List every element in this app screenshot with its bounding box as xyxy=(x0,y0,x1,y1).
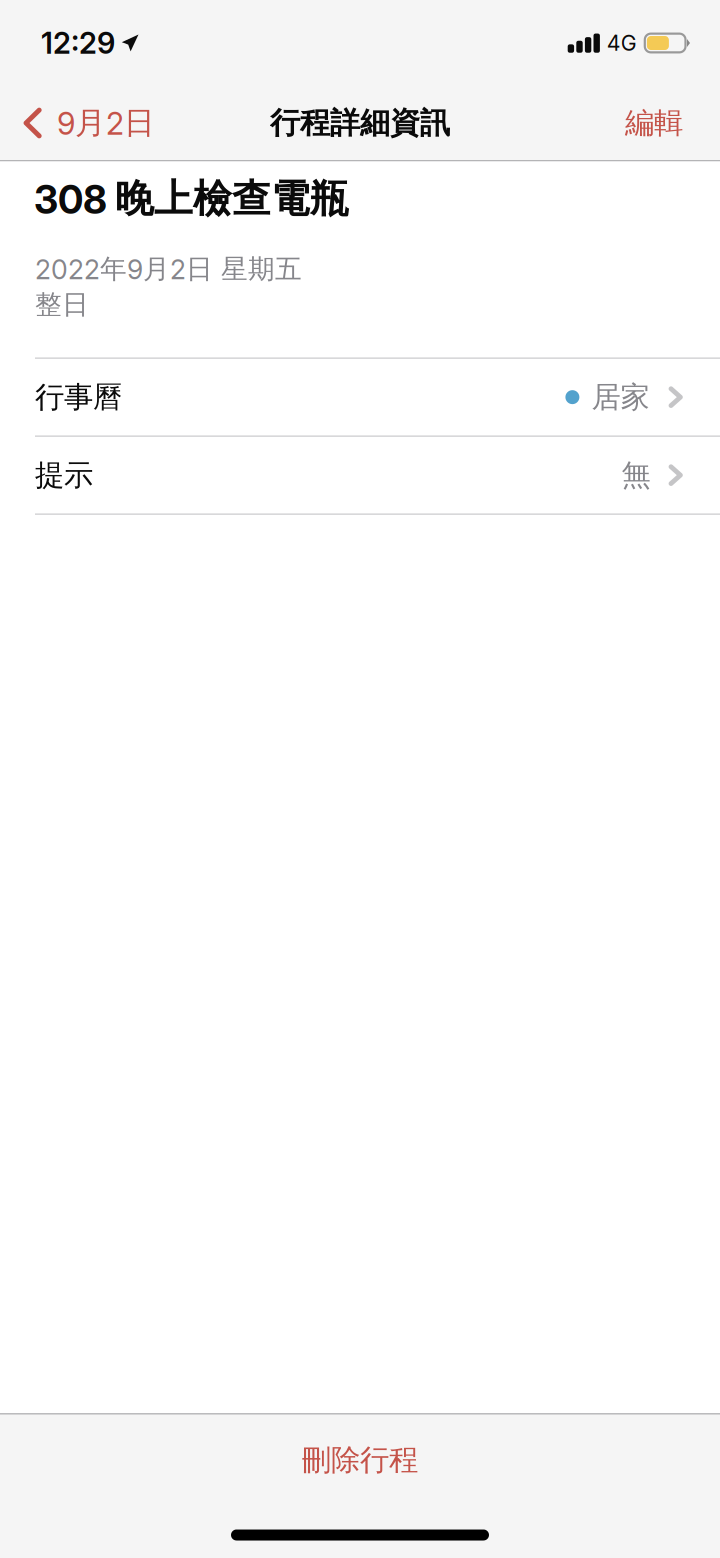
button[interactable]: 9月2日 xyxy=(0,86,169,160)
button[interactable]: 行事曆 xyxy=(0,359,720,437)
staticText: 刪除行程 xyxy=(302,1441,418,1478)
button[interactable]: 提示 xyxy=(0,437,720,515)
staticText: 無 xyxy=(621,457,650,494)
staticText: 9月2日 xyxy=(57,104,155,142)
staticText: 行程詳細資訊 xyxy=(270,104,450,142)
staticText: 居家 xyxy=(591,379,649,416)
staticText: 編輯 xyxy=(625,104,683,141)
staticText: 整日 xyxy=(35,288,89,321)
staticText: 2022年9月2日 星期五 xyxy=(35,252,302,286)
staticText: 行事曆 xyxy=(35,379,122,416)
staticText: 12:29 xyxy=(41,25,115,61)
staticText: 提示 xyxy=(35,457,93,494)
button[interactable]: 編輯 xyxy=(607,86,720,160)
staticText: 4G xyxy=(607,30,637,56)
button[interactable]: 刪除行程 xyxy=(0,1414,720,1505)
staticText: 308 晚上檢查電瓶 xyxy=(34,174,349,223)
